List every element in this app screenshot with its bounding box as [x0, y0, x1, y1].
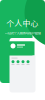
staticText: 个人中心	[6, 17, 38, 29]
staticText: 一站式个人服务与账户管理	[4, 31, 40, 36]
